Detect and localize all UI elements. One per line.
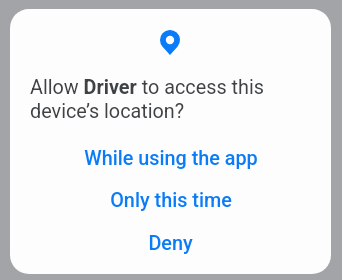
staticText: Deny: [148, 232, 193, 255]
other: Location: [160, 30, 180, 55]
staticText: Allow Driver to access this device’s loc…: [30, 76, 315, 123]
staticText: Only this time: [110, 189, 232, 212]
button[interactable]: Only this time: [10, 179, 331, 221]
button[interactable]: While using the app: [10, 137, 331, 179]
button[interactable]: Deny: [10, 222, 331, 264]
staticText: While using the app: [84, 147, 258, 170]
